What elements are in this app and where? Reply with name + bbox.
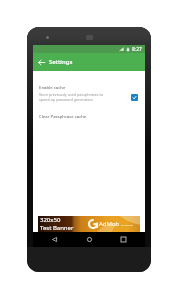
staticText: Enable cache: [39, 84, 66, 90]
staticText: Settings: [49, 58, 73, 66]
staticText: Store previously used passphrases to spe…: [39, 92, 104, 102]
button[interactable]: Recent apps: [118, 234, 129, 245]
button[interactable]: Navigate up: [35, 56, 47, 68]
staticText: 320x50: [40, 216, 61, 224]
button[interactable]: Back: [49, 234, 60, 245]
button[interactable]: Home: [84, 234, 95, 245]
button[interactable]: 320x50: [38, 216, 140, 232]
staticText: Clear Passphrase cache: [39, 113, 87, 119]
staticText: AdMob: [99, 220, 120, 228]
button[interactable]: Enable cache: [33, 84, 145, 102]
staticText: Test Banner: [40, 224, 74, 232]
button[interactable]: Clear Passphrase cache: [33, 113, 145, 119]
button[interactable]: Enable cache: [131, 94, 138, 101]
staticText: by Google: [121, 223, 133, 226]
staticText: 8:27: [132, 46, 142, 53]
